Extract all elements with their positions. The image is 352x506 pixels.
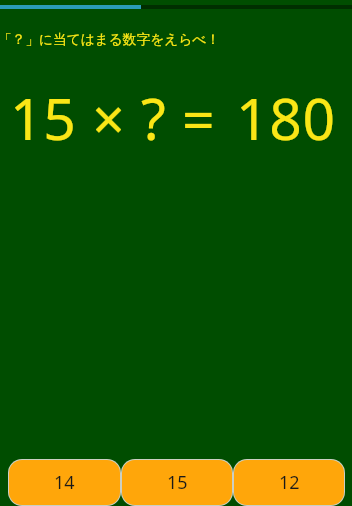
staticText: 12 — [279, 470, 300, 495]
button[interactable]: 12 — [234, 460, 344, 505]
staticText: 「？」に当てはまる数字をえらべ！ — [0, 31, 220, 48]
button[interactable]: 14 — [9, 460, 120, 505]
staticText: 180 — [236, 79, 336, 157]
staticText: 14 — [54, 470, 75, 495]
staticText: 15 × ? = — [10, 79, 216, 157]
button[interactable]: 15 — [122, 460, 232, 505]
staticText: 15 — [167, 470, 188, 495]
